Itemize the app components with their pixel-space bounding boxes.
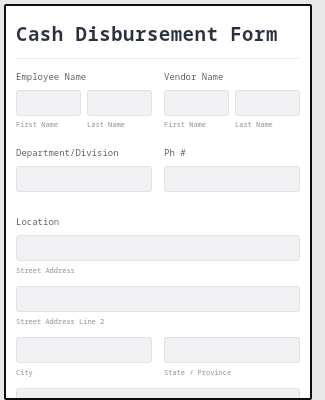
staticText: Department/Division xyxy=(16,146,119,158)
staticText: Cash Disbursement Form xyxy=(16,21,278,47)
staticText: Ph # xyxy=(164,146,186,158)
button[interactable] xyxy=(16,90,81,116)
staticText: Vendor Name xyxy=(164,70,224,82)
button[interactable] xyxy=(87,90,152,116)
button[interactable] xyxy=(164,166,300,192)
button[interactable] xyxy=(235,90,300,116)
button[interactable] xyxy=(164,90,229,116)
staticText: First Name xyxy=(16,120,81,130)
button[interactable] xyxy=(16,337,152,363)
staticText: City xyxy=(16,368,33,378)
button[interactable] xyxy=(164,337,300,363)
staticText: Street Address Line 2 xyxy=(16,317,105,327)
staticText: Last Name xyxy=(87,120,152,130)
staticText: Location xyxy=(16,215,60,227)
staticText: Last Name xyxy=(235,120,300,130)
button[interactable] xyxy=(16,166,152,192)
staticText: Employee Name xyxy=(16,70,87,82)
staticText: First Name xyxy=(164,120,229,130)
button[interactable] xyxy=(16,286,300,312)
button[interactable] xyxy=(16,388,300,400)
staticText: Street Address xyxy=(16,266,75,276)
button[interactable] xyxy=(16,235,300,261)
staticText: State / Province xyxy=(164,368,232,378)
